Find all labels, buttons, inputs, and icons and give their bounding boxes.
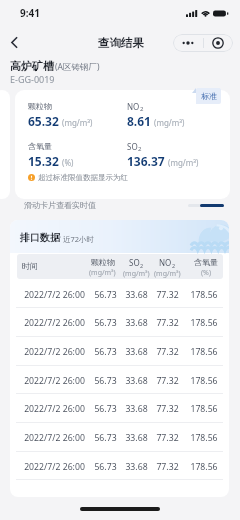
staticText: 136.37 (127, 153, 165, 169)
staticText: SO (129, 257, 140, 268)
staticText: 2022/7/2 26:00 (24, 461, 85, 473)
button[interactable]: 颗粒物 (15, 90, 230, 199)
staticText: 56.73 (94, 317, 117, 329)
staticText: 高炉矿槽 (10, 59, 54, 73)
staticText: 178.56 (190, 346, 218, 358)
staticText: SO (127, 141, 138, 152)
staticText: 77.32 (156, 289, 179, 301)
staticText: 56.73 (94, 403, 117, 415)
button[interactable] (10, 365, 229, 394)
staticText: 33.68 (125, 461, 148, 473)
button[interactable] (10, 393, 229, 422)
staticText: 77.32 (156, 461, 179, 473)
staticText: (mg/m³) (62, 117, 93, 128)
staticText: 2022/7/2 26:00 (24, 346, 85, 358)
staticText: 滑动卡片查看实时值 (24, 200, 96, 210)
staticText: 33.68 (125, 432, 148, 444)
staticText: NO (159, 257, 172, 268)
button[interactable] (10, 307, 229, 336)
staticText: (mg/m³) (154, 269, 181, 279)
staticText: 56.73 (94, 461, 117, 473)
staticText: 77.32 (156, 346, 179, 358)
staticText: 近72小时 (63, 234, 95, 244)
staticText: E-GG-0019 (10, 73, 55, 85)
staticText: 含氧量 (194, 257, 218, 267)
button[interactable]: Close (203, 34, 233, 52)
staticText: 2 (172, 262, 176, 269)
button[interactable]: More options (173, 34, 203, 52)
staticText: 178.56 (190, 461, 218, 473)
staticText: 178.56 (190, 375, 218, 387)
staticText: 2022/7/2 26:00 (24, 289, 85, 301)
button[interactable] (10, 279, 229, 308)
staticText: 56.73 (94, 375, 117, 387)
staticText: 65.32 (28, 113, 59, 129)
button[interactable] (10, 336, 229, 365)
staticText: 时间 (22, 261, 38, 271)
staticText: 33.68 (125, 403, 148, 415)
staticText: (mg/m³) (89, 268, 116, 278)
staticText: 排口数据 (20, 231, 60, 244)
staticText: 查询结果 (98, 36, 144, 50)
staticText: 2022/7/2 26:00 (24, 375, 85, 387)
staticText: 56.73 (94, 289, 117, 301)
staticText: 颗粒物 (28, 101, 52, 111)
staticText: (A区铸钢厂) (55, 61, 100, 73)
staticText: 77.32 (156, 403, 179, 415)
staticText: 77.32 (156, 317, 179, 329)
staticText: 178.56 (190, 403, 218, 415)
staticText: 9:41 (20, 6, 40, 20)
button[interactable]: Back (2, 30, 26, 54)
staticText: 15.32 (28, 153, 59, 169)
staticText: 2 (140, 105, 144, 113)
staticText: 77.32 (156, 432, 179, 444)
staticText: 33.68 (125, 289, 148, 301)
staticText: (mg/m³) (123, 269, 150, 279)
staticText: 77.32 (156, 375, 179, 387)
staticText: 标准 (201, 91, 217, 101)
button[interactable]: 标准 (196, 88, 221, 104)
staticText: 超过标准限值数据显示为红 (38, 173, 128, 182)
staticText: 33.68 (125, 317, 148, 329)
staticText: (mg/m³) (154, 117, 185, 128)
staticText: 56.73 (94, 346, 117, 358)
button[interactable] (10, 422, 229, 451)
staticText: 178.56 (190, 289, 218, 301)
staticText: 颗粒物 (91, 257, 115, 267)
staticText: 2022/7/2 26:00 (24, 317, 85, 329)
staticText: 178.56 (190, 317, 218, 329)
staticText: (mg/m³) (168, 157, 199, 168)
button[interactable] (10, 451, 229, 480)
staticText: NO (127, 101, 140, 112)
staticText: 33.68 (125, 346, 148, 358)
staticText: 2022/7/2 26:00 (24, 403, 85, 415)
staticText: 178.56 (190, 432, 218, 444)
staticText: 2022/7/2 26:00 (24, 432, 85, 444)
staticText: 2 (138, 145, 142, 153)
staticText: 56.73 (94, 432, 117, 444)
staticText: 8.61 (127, 113, 151, 129)
staticText: 33.68 (125, 375, 148, 387)
staticText: (%) (62, 157, 74, 168)
staticText: (%) (201, 268, 212, 278)
staticText: 2 (140, 262, 144, 269)
staticText: 含氧量 (28, 141, 52, 151)
